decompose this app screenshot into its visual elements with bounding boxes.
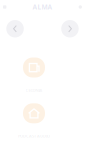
button[interactable]: PODCAST AUDIO [23, 103, 45, 123]
staticText: PODCAST AUDIO [18, 133, 50, 139]
button[interactable]: Next [61, 20, 79, 37]
button[interactable]: Previous [6, 20, 24, 37]
staticText: CECONIA [25, 87, 42, 93]
button[interactable]: Account [77, 1, 84, 13]
staticText: ALMA [32, 3, 52, 11]
button[interactable]: Menu [1, 1, 8, 13]
button[interactable]: CECONIA [23, 57, 45, 77]
